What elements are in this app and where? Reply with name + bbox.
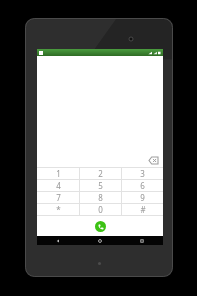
staticText: * [56,204,61,215]
button[interactable]: Recent apps [121,236,163,245]
button[interactable]: 2 [80,168,121,179]
button[interactable]: 4 [37,180,79,191]
button[interactable]: 5 [80,180,121,191]
button[interactable]: 9 [122,192,163,203]
staticText: # [140,204,146,215]
staticText: 3 [140,168,145,179]
staticText: 2 [98,168,103,179]
staticText: 6 [140,180,145,191]
staticText: 5 [98,180,103,191]
staticText: 0 [98,204,103,215]
staticText: 4 [56,180,61,191]
button[interactable]: 3 [122,168,163,179]
staticText: 1 [56,168,61,179]
button[interactable]: Delete [148,155,159,165]
staticText: 7 [56,192,61,203]
button[interactable]: * [37,204,79,215]
button[interactable]: # [122,204,163,215]
button[interactable]: 0 [80,204,121,215]
button[interactable]: 7 [37,192,79,203]
button[interactable]: 1 [37,168,79,179]
button[interactable]: Call [95,221,106,232]
staticText: 8 [98,192,103,203]
button[interactable]: 8 [80,192,121,203]
button[interactable]: 6 [122,180,163,191]
button[interactable]: Back [37,236,79,245]
button[interactable]: Home [79,236,121,245]
staticText: 9 [140,192,145,203]
